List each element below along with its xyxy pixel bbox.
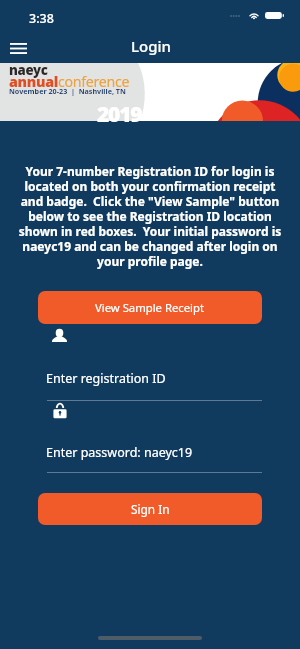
staticText: naeyc — [9, 61, 48, 79]
staticText: Your 7-number Registration ID for login … — [14, 163, 286, 270]
button[interactable]: View Sample Receipt — [38, 291, 262, 324]
staticText: 3:38 — [29, 10, 54, 27]
staticText: annual — [9, 72, 58, 91]
button[interactable]: Open navigation menu — [0, 31, 36, 66]
staticText: Enter password: naeyc19 — [46, 444, 193, 461]
staticText: November 20-23 | Nashville, TN — [9, 86, 126, 96]
staticText: conference — [58, 72, 130, 91]
staticText: View Sample Receipt — [95, 300, 205, 315]
staticText: Enter registration ID — [46, 370, 166, 387]
staticText: Login — [131, 36, 171, 56]
staticText: 2019 — [97, 100, 142, 129]
staticText: Sign In — [131, 501, 170, 517]
button[interactable]: Sign In — [38, 493, 262, 525]
